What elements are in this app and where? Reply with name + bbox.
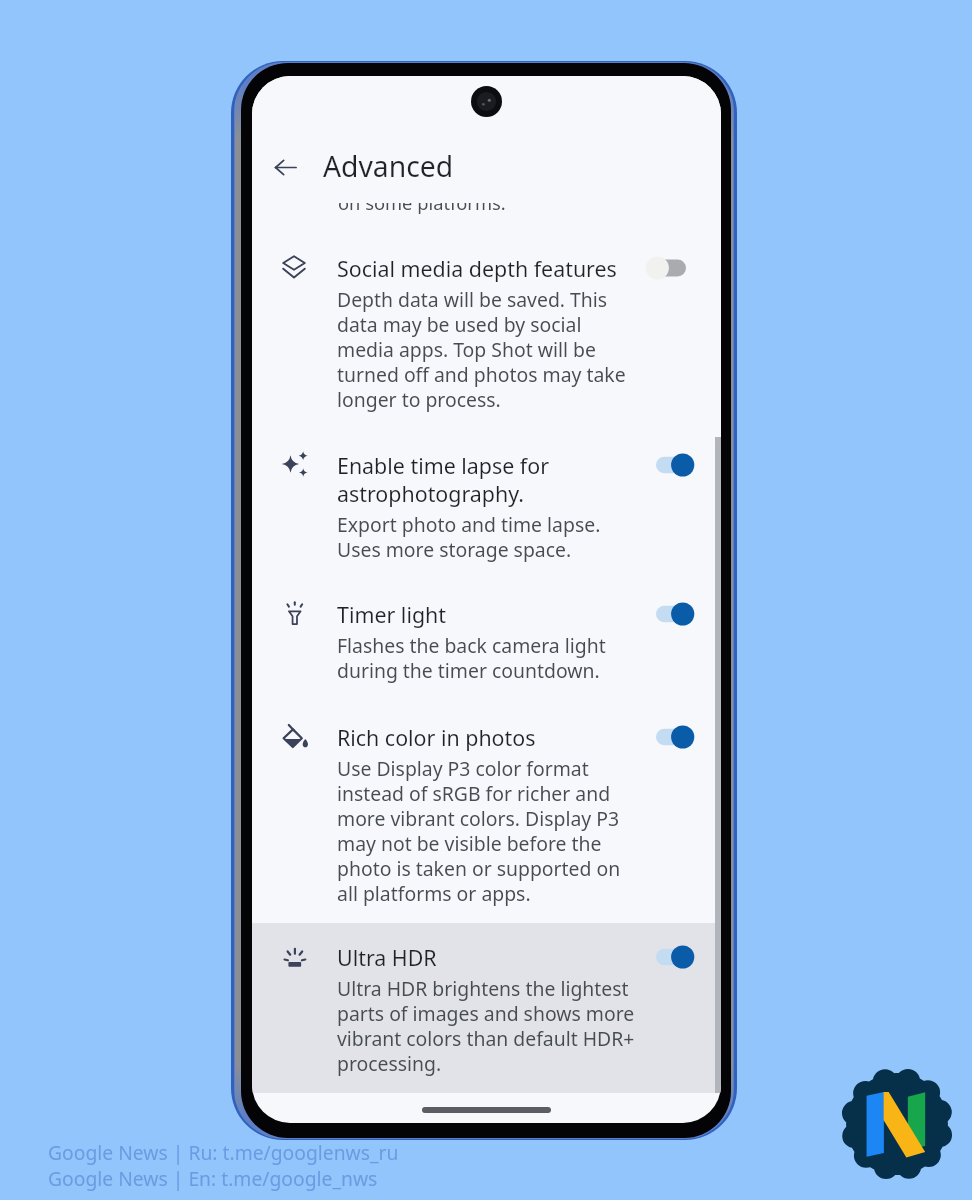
button[interactable]: Back xyxy=(257,139,313,195)
staticText: Google News | Ru: t.me/googlenws_ru xyxy=(48,1139,399,1165)
button[interactable]: Switch on xyxy=(643,594,699,634)
staticText: Export photo and time lapse. Uses more s… xyxy=(337,511,601,562)
button[interactable]: Enable time lapse for astrophotography. xyxy=(252,437,721,586)
staticText: Social media depth features xyxy=(337,254,617,283)
staticText: Timer light xyxy=(337,600,447,629)
button[interactable]: Switch off xyxy=(643,248,699,288)
staticText: Ultra HDR xyxy=(337,943,437,972)
button[interactable]: Ultra HDR xyxy=(252,929,721,1093)
button[interactable]: Switch on xyxy=(643,937,699,977)
staticText: Use Display P3 color format instead of s… xyxy=(337,755,621,906)
button[interactable]: Rich color in photos xyxy=(252,709,721,903)
button[interactable]: Switch on xyxy=(643,445,699,485)
button[interactable]: Timer light xyxy=(252,586,721,710)
button[interactable]: Switch on xyxy=(643,717,699,757)
staticText: Depth data will be saved. This data may … xyxy=(337,286,626,412)
staticText: on some platforms. xyxy=(338,190,506,215)
staticText: Ultra HDR brightens the lightest parts o… xyxy=(337,975,635,1076)
button[interactable]: Social media depth features xyxy=(252,240,721,437)
staticText: Google News | En: t.me/google_nws xyxy=(48,1165,378,1191)
staticText: Advanced xyxy=(323,147,454,186)
staticText: Flashes the back camera light during the… xyxy=(337,632,606,683)
staticText: Rich color in photos xyxy=(337,723,536,752)
staticText: Enable time lapse for astrophotography. xyxy=(337,451,549,508)
